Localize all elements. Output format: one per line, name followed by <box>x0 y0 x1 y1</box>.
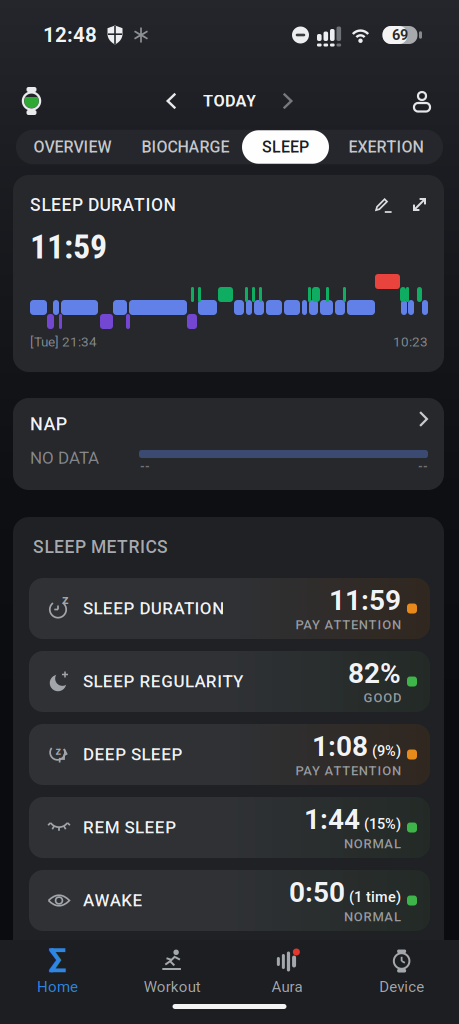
staticText: SLEEP METRICS <box>33 537 168 557</box>
button[interactable]: z <box>29 724 430 785</box>
button[interactable]: Edit sleep <box>373 195 394 213</box>
staticText: DEEP SLEEP <box>83 744 183 764</box>
staticText: SLEEP DURATION <box>83 598 224 618</box>
staticText: -- <box>140 460 150 474</box>
staticText: Aura <box>271 978 302 996</box>
button[interactable]: Watch status <box>17 87 45 115</box>
staticText: PAY ATTENTION <box>295 617 401 632</box>
button[interactable]: SLEEP REGULARITY <box>29 651 430 712</box>
button[interactable]: Aura <box>229 940 344 1009</box>
staticText: -- <box>418 460 428 474</box>
staticText: NORMAL <box>344 836 401 851</box>
button[interactable]: Workout <box>115 940 230 1009</box>
button[interactable]: OVERVIEW <box>16 130 129 164</box>
staticText: 12:48 <box>43 23 97 47</box>
staticText: Home <box>37 978 78 996</box>
staticText: 69 <box>392 26 408 43</box>
staticText: TODAY <box>203 91 256 110</box>
staticText: Workout <box>144 978 201 996</box>
staticText: 82% <box>348 657 401 690</box>
staticText: 11:59 <box>329 584 401 617</box>
staticText: (15%) <box>364 816 401 833</box>
staticText: 1:08 <box>312 730 368 763</box>
staticText: NAP <box>30 413 67 435</box>
button[interactable]: BIOCHARGE <box>129 130 242 164</box>
button[interactable]: Previous day <box>166 92 176 109</box>
button[interactable]: Σ <box>0 940 115 1009</box>
staticText: NO DATA <box>30 448 99 468</box>
button[interactable]: REM SLEEP <box>29 797 430 858</box>
staticText: AWAKE <box>83 890 143 910</box>
staticText: 1:44 <box>304 803 360 836</box>
button[interactable]: NAP <box>13 398 444 490</box>
staticText: SLEEP <box>262 138 309 156</box>
button[interactable]: Profile <box>411 90 433 112</box>
staticText: EXERTION <box>348 138 423 156</box>
staticText: SLEEP DURATION <box>30 195 175 215</box>
staticText: 11:59 <box>30 227 107 267</box>
staticText: REM SLEEP <box>83 817 176 837</box>
button[interactable]: AWAKE <box>29 870 430 931</box>
button[interactable]: EXERTION <box>329 130 443 164</box>
button[interactable]: Expand <box>411 196 428 213</box>
staticText: BIOCHARGE <box>141 138 229 156</box>
staticText: (1 time) <box>349 889 401 906</box>
staticText: 0:50 <box>289 876 345 909</box>
staticText: PAY ATTENTION <box>295 763 401 778</box>
button[interactable]: Next day <box>282 92 292 109</box>
staticText: Σ <box>48 942 67 980</box>
staticText: OVERVIEW <box>33 138 111 156</box>
button[interactable]: SLEEP <box>242 130 329 164</box>
staticText: NORMAL <box>344 909 401 924</box>
staticText: (9%) <box>372 743 401 760</box>
staticText: [Tue] 21:34 <box>30 334 97 350</box>
staticText: z <box>55 745 61 757</box>
staticText: GOOD <box>364 690 401 705</box>
staticText: Device <box>379 978 424 996</box>
staticText: SLEEP REGULARITY <box>83 671 243 691</box>
staticText: 10:23 <box>393 334 428 350</box>
staticText: z <box>62 592 69 607</box>
button[interactable]: Device <box>344 940 459 1009</box>
button[interactable]: z <box>29 578 430 639</box>
